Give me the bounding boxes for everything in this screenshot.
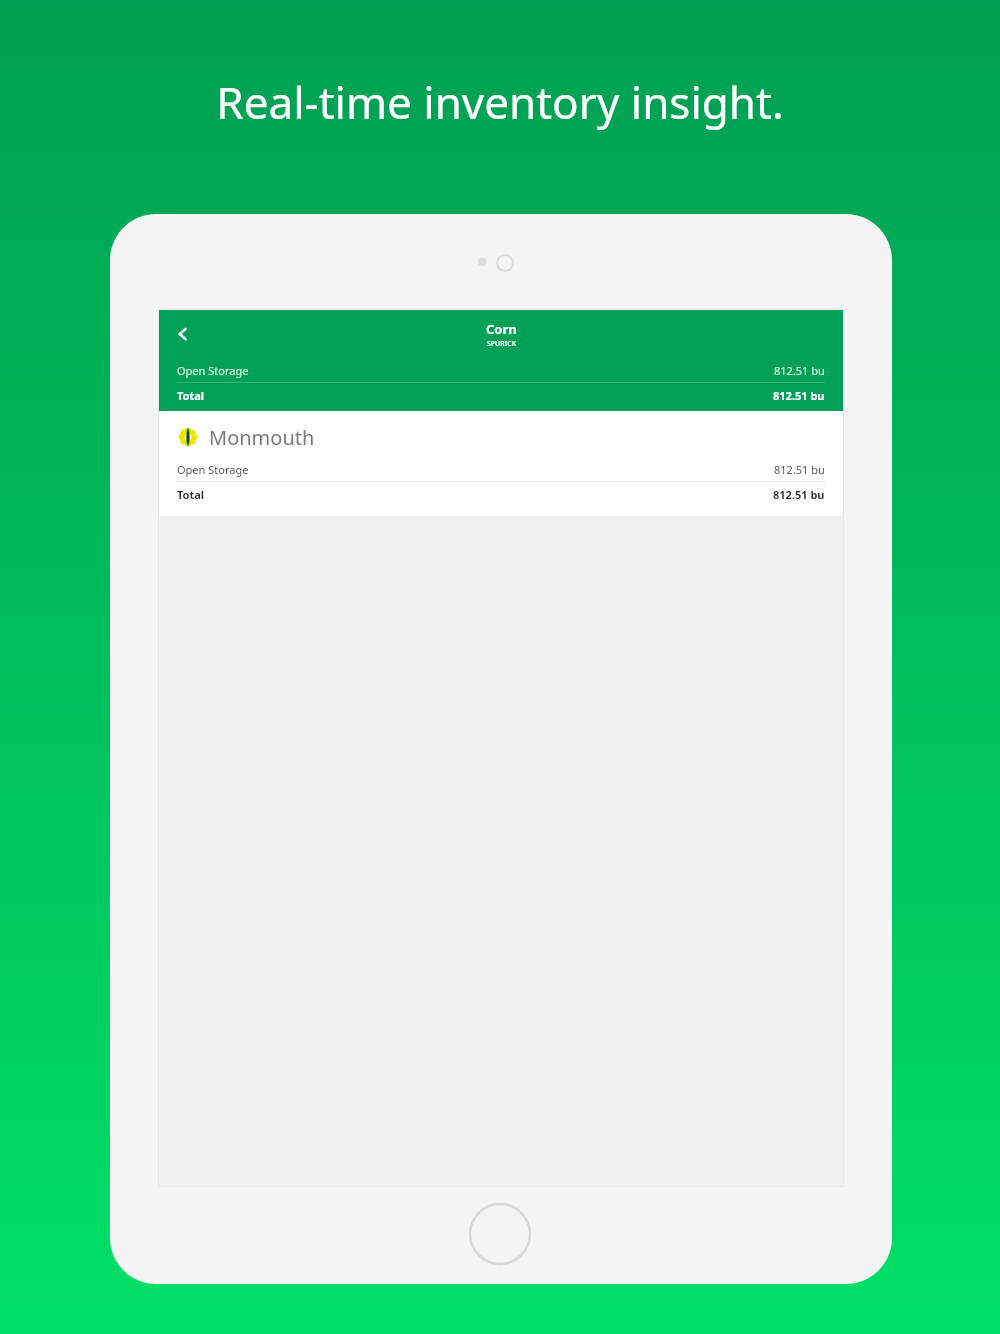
staticText: Real-time inventory insight. <box>216 72 784 132</box>
button[interactable]: Total <box>159 383 843 407</box>
staticText: 812.51 bu <box>774 363 825 378</box>
staticText: Corn <box>486 320 517 338</box>
staticText: 812.51 bu <box>773 487 825 502</box>
staticText: Total <box>177 487 205 502</box>
staticText: Open Storage <box>177 363 249 378</box>
staticText: 812.51 bu <box>773 388 825 403</box>
button[interactable]: Open Storage <box>159 457 843 481</box>
staticText: Open Storage <box>177 462 249 477</box>
button[interactable]: Total <box>159 482 843 506</box>
staticText: 812.51 bu <box>774 462 825 477</box>
staticText: Total <box>177 388 205 403</box>
button[interactable]: Open Storage <box>159 358 843 382</box>
button[interactable]: Monmouth <box>159 417 843 457</box>
button[interactable]: Back <box>165 316 201 352</box>
staticText: Monmouth <box>209 424 315 451</box>
staticText: SPURICK <box>487 339 517 349</box>
